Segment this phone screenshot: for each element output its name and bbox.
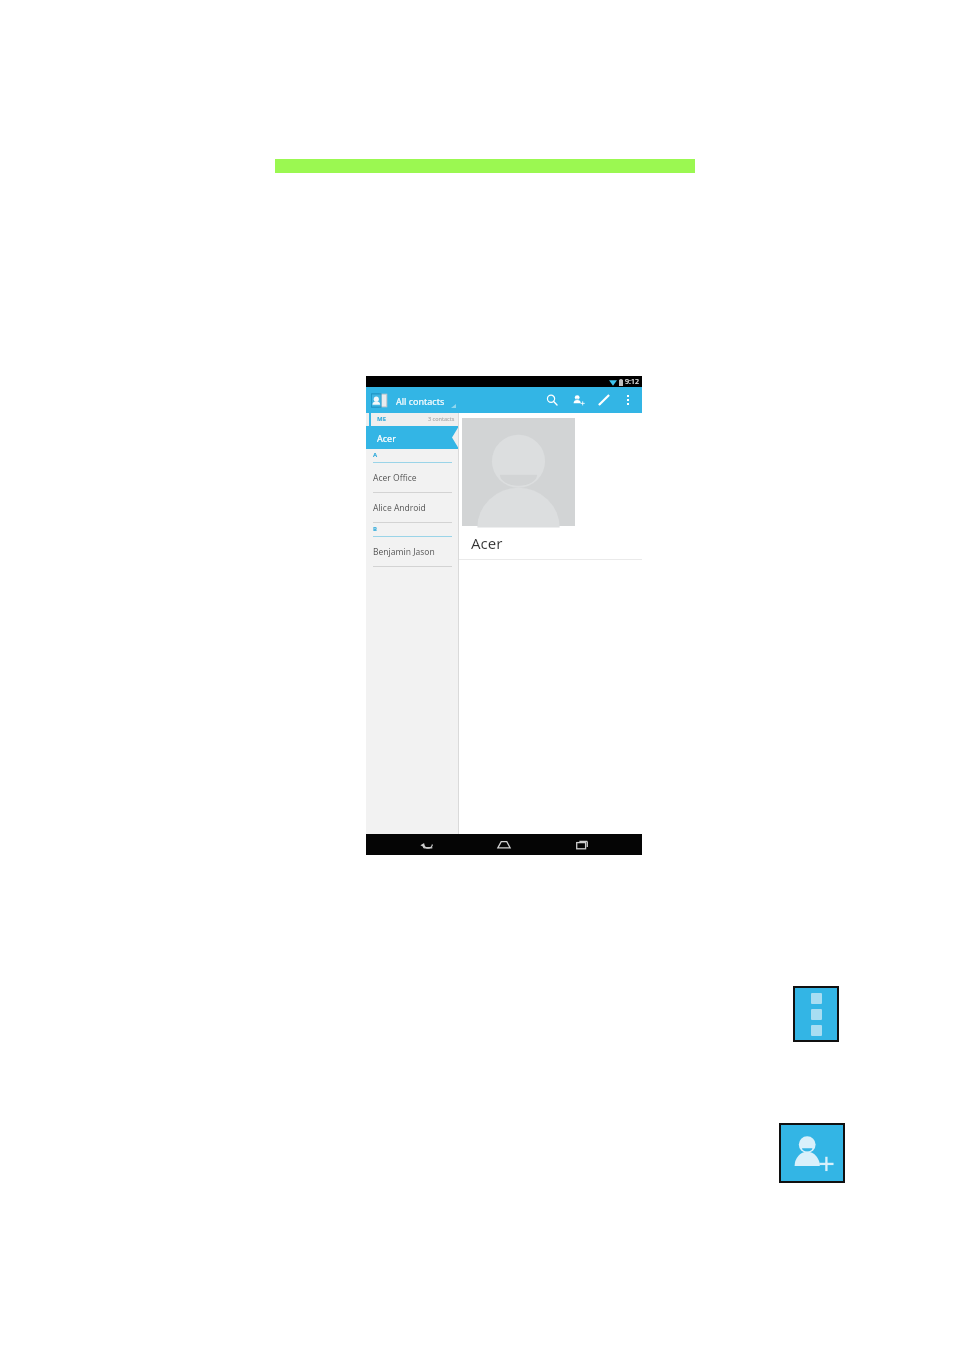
button[interactable]: Benjamin Jason <box>366 537 459 567</box>
button[interactable]: Search <box>539 387 565 413</box>
button[interactable]: Recent apps <box>565 834 599 855</box>
staticText: 9:12 <box>625 377 639 387</box>
staticText: Benjamin Jason <box>373 546 435 558</box>
button[interactable]: Add contact <box>565 387 591 413</box>
staticText: Acer <box>471 533 503 553</box>
staticText: B <box>373 525 377 533</box>
button[interactable]: Acer Office <box>366 463 459 493</box>
staticText: Acer <box>377 432 396 444</box>
staticText: 3 contacts <box>428 415 455 422</box>
button[interactable] <box>462 418 575 526</box>
button[interactable]: Acer <box>366 426 459 449</box>
button[interactable]: Home <box>487 834 521 855</box>
button[interactable]: Back <box>410 834 444 855</box>
staticText: ME <box>377 415 387 423</box>
button[interactable]: More options <box>793 986 839 1042</box>
button[interactable]: More options <box>617 389 639 411</box>
button[interactable]: Add contact <box>779 1123 845 1183</box>
staticText: All contacts <box>396 395 445 407</box>
staticText: Alice Android <box>373 502 426 514</box>
button[interactable]: Alice Android <box>366 493 459 523</box>
staticText: Acer Office <box>373 472 417 484</box>
staticText: A <box>373 451 378 459</box>
button[interactable]: Edit <box>591 387 617 413</box>
button[interactable]: All contacts <box>366 392 456 409</box>
